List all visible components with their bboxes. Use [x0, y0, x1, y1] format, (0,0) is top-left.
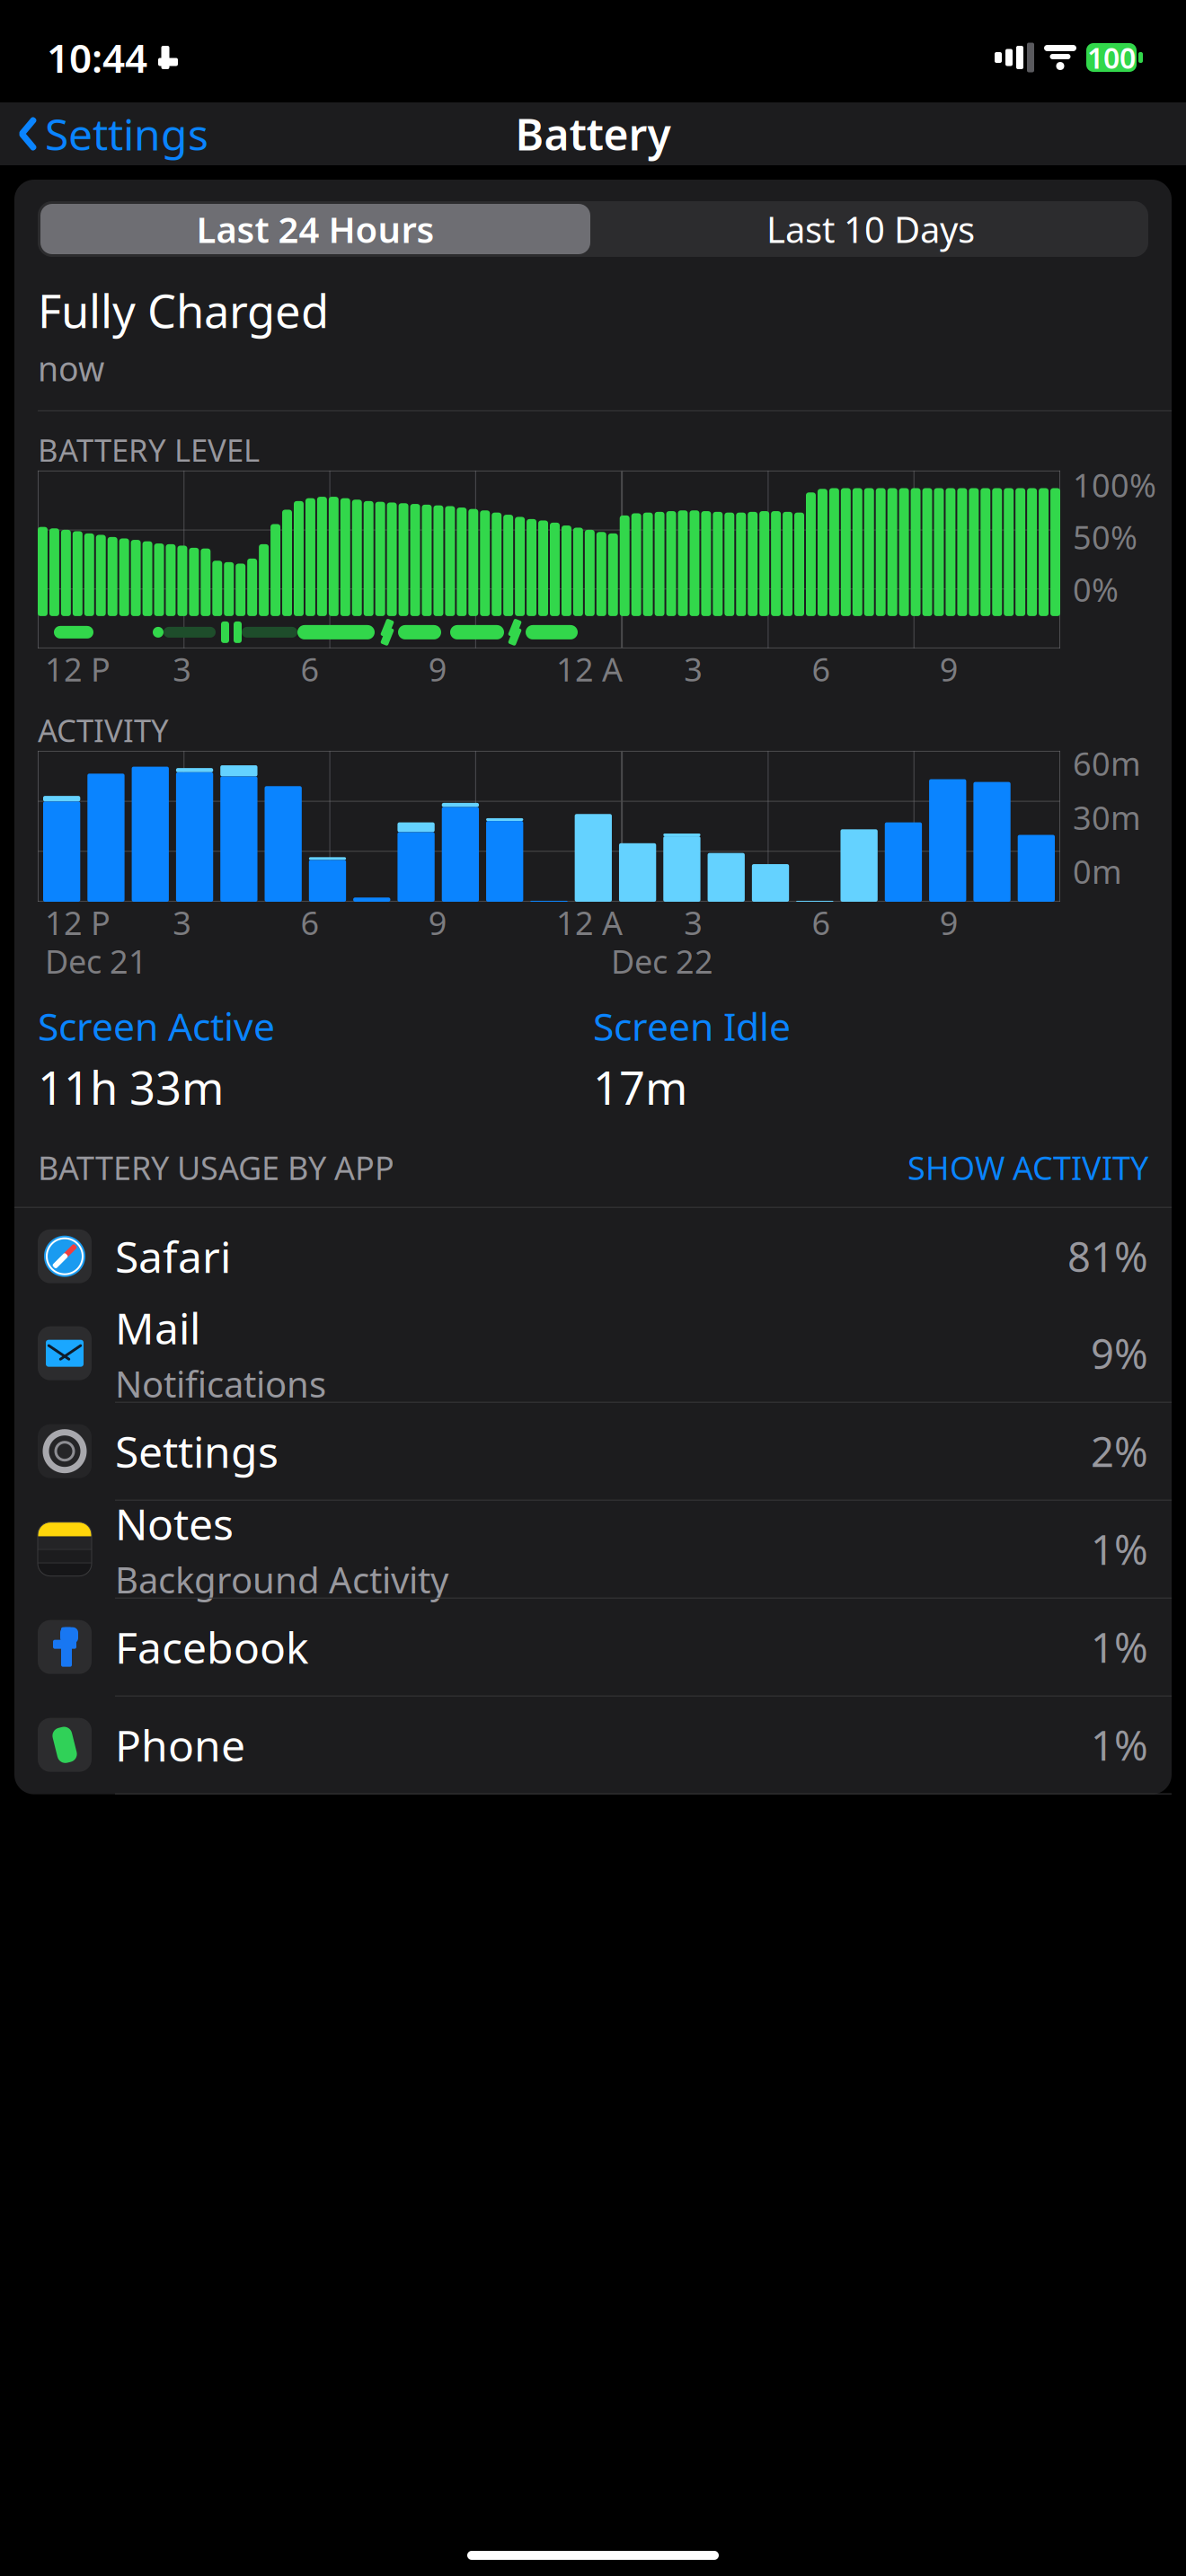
button[interactable]: Settings — [0, 98, 226, 170]
staticText: Screen Idle — [593, 1000, 791, 1051]
staticText: 1% — [1091, 1620, 1148, 1674]
staticText: 30m — [1073, 796, 1141, 839]
staticText: 9 — [940, 901, 959, 944]
staticText: 0% — [1073, 568, 1119, 611]
staticText: 9 — [428, 648, 447, 691]
staticText: 12 A — [556, 901, 623, 944]
staticText: now — [38, 346, 104, 391]
staticText: BATTERY LEVEL — [38, 429, 260, 471]
button[interactable]: Facebook — [14, 1599, 1172, 1696]
button[interactable]: Notes — [14, 1501, 1172, 1599]
staticText: 10:44 — [47, 31, 147, 84]
staticText: 3 — [173, 648, 192, 691]
button[interactable]: Last 10 Days — [593, 201, 1148, 257]
staticText: 12 A — [556, 648, 623, 691]
staticText: 2% — [1091, 1424, 1148, 1478]
staticText: 11h 33m — [38, 1057, 224, 1117]
button[interactable]: Last 24 Hours — [38, 201, 593, 257]
staticText: ACTIVITY — [38, 709, 169, 751]
staticText: 1% — [1091, 1522, 1148, 1576]
staticText: Fully Charged — [38, 280, 329, 341]
staticText: 12 P — [45, 648, 111, 691]
button[interactable]: SHOW ACTIVITY — [898, 1141, 1148, 1194]
staticText: 6 — [812, 901, 831, 944]
staticText: SHOW ACTIVITY — [907, 1146, 1148, 1189]
staticText: Mail — [115, 1299, 200, 1356]
staticText: Notifications — [115, 1360, 326, 1408]
staticText: Last 10 Days — [766, 205, 975, 253]
staticText: BATTERY USAGE BY APP — [38, 1146, 394, 1189]
button[interactable]: Mail — [14, 1305, 1172, 1403]
staticText: 100% — [1073, 463, 1156, 506]
button[interactable]: Safari — [14, 1207, 1172, 1305]
staticText: 9 — [940, 648, 959, 691]
staticText: 3 — [684, 901, 703, 944]
staticText: 1% — [1091, 1718, 1148, 1772]
staticText: 3 — [684, 648, 703, 691]
staticText: 50% — [1073, 516, 1137, 558]
staticText: 9% — [1091, 1326, 1148, 1380]
staticText: 3 — [173, 901, 192, 944]
button[interactable]: Phone — [14, 1696, 1172, 1794]
button[interactable]: Settings — [14, 1403, 1172, 1501]
staticText: Safari — [115, 1228, 231, 1285]
staticText: 60m — [1073, 742, 1141, 785]
staticText: 100 — [1087, 38, 1136, 77]
staticText: 81% — [1067, 1229, 1148, 1283]
staticText: Battery — [515, 105, 671, 162]
staticText: Dec 22 — [611, 940, 713, 982]
staticText: 12 P — [45, 901, 111, 944]
staticText: Notes — [115, 1495, 234, 1552]
staticText: 0m — [1073, 850, 1122, 893]
staticText: Screen Active — [38, 1000, 275, 1051]
staticText: Last 24 Hours — [196, 205, 434, 253]
staticText: 6 — [301, 901, 319, 944]
staticText: 6 — [301, 648, 319, 691]
staticText: Background Activity — [115, 1556, 448, 1603]
staticText: 17m — [593, 1057, 687, 1117]
staticText: Dec 21 — [45, 940, 147, 982]
staticText: Facebook — [115, 1618, 309, 1676]
staticText: 6 — [812, 648, 831, 691]
staticText: Phone — [115, 1716, 245, 1773]
staticText: Settings — [115, 1423, 279, 1480]
staticText: Settings — [45, 105, 208, 162]
staticText: 9 — [428, 901, 447, 944]
